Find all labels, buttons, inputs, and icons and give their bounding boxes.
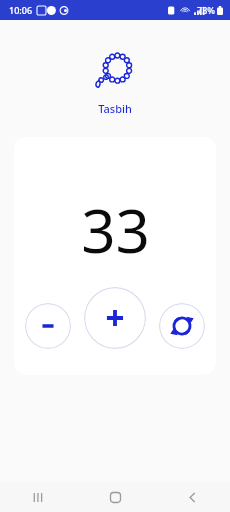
button[interactable]: Reset count <box>159 303 205 349</box>
button[interactable]: Tasbih <box>95 50 135 92</box>
button[interactable]: Home <box>93 482 137 512</box>
button[interactable]: Decrease count <box>25 303 71 349</box>
staticText: 10:06 <box>9 4 33 16</box>
button[interactable]: Increase count <box>84 287 146 349</box>
staticText: 73% <box>197 4 215 16</box>
staticText: Tasbih <box>98 101 132 116</box>
staticText: 33 <box>81 189 150 271</box>
button[interactable]: Recents <box>16 482 60 512</box>
button[interactable]: Back <box>170 482 214 512</box>
